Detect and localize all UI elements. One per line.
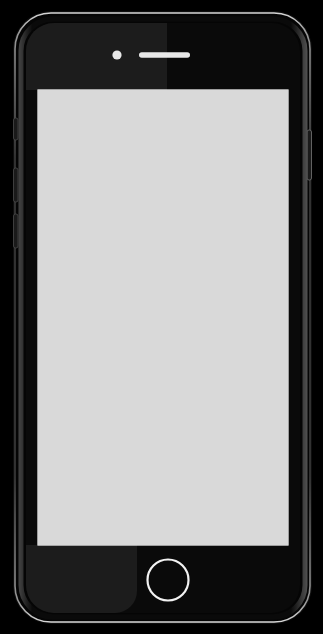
button[interactable]: Smartphone device mockup with blank scre… (0, 0, 323, 634)
